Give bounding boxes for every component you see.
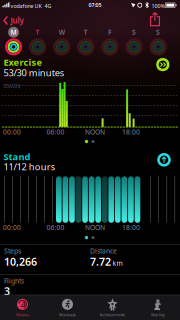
staticText: Workouts <box>59 312 76 317</box>
staticText: 100% <box>151 2 164 9</box>
staticText: 00:00 <box>3 223 21 232</box>
staticText: T <box>36 28 40 37</box>
staticText: minutes <box>29 66 64 79</box>
staticText: 06:00 <box>46 223 64 232</box>
staticText: 4G <box>44 2 51 9</box>
staticText: 11/12 <box>3 160 26 173</box>
button[interactable]: Achievements <box>90 296 135 320</box>
staticText: NOON <box>85 223 105 232</box>
staticText: S <box>156 28 160 37</box>
staticText: Sharing <box>151 312 164 317</box>
staticText: Steps <box>4 246 21 255</box>
button[interactable]: Day T <box>26 27 50 37</box>
button[interactable]: Day F <box>98 27 122 37</box>
button[interactable]: Day S <box>146 27 170 37</box>
staticText: July <box>10 15 23 26</box>
button[interactable]: Share <box>147 11 163 27</box>
staticText: 00:00 <box>3 127 21 136</box>
staticText: M <box>10 28 16 37</box>
staticText: hours <box>29 160 55 173</box>
staticText: km <box>112 259 122 268</box>
staticText: Stand <box>3 150 30 163</box>
button[interactable]: Day M <box>1 27 25 37</box>
staticText: 35MIN <box>3 82 20 90</box>
button[interactable]: Workouts <box>45 296 90 320</box>
staticText: Distance <box>90 246 117 255</box>
staticText: S <box>132 28 136 37</box>
staticText: 18:00 <box>122 223 140 232</box>
staticText: T <box>84 28 88 37</box>
staticText: Flights <box>4 276 24 285</box>
staticText: 10,266 <box>4 254 37 269</box>
button[interactable]: Sharing <box>135 296 180 320</box>
staticText: 18:00 <box>122 127 140 136</box>
button[interactable]: Back <box>3 13 23 27</box>
staticText: F <box>108 28 112 37</box>
staticText: W <box>59 28 65 37</box>
staticText: 3 <box>4 284 10 298</box>
staticText: History <box>16 312 29 317</box>
staticText: 07:05 <box>88 1 101 9</box>
button[interactable]: Day W <box>50 27 74 37</box>
button[interactable]: History <box>0 296 45 320</box>
staticText: 06:00 <box>46 127 64 136</box>
staticText: NOON <box>85 127 105 136</box>
staticText: 7.72 <box>90 254 111 269</box>
button[interactable]: Day S <box>122 27 146 37</box>
staticText: Exercise <box>3 56 42 68</box>
staticText: 53/30 <box>3 66 26 79</box>
staticText: vodafone UK <box>10 2 41 9</box>
staticText: Achievements <box>100 312 125 317</box>
button[interactable]: Day T <box>74 27 98 37</box>
